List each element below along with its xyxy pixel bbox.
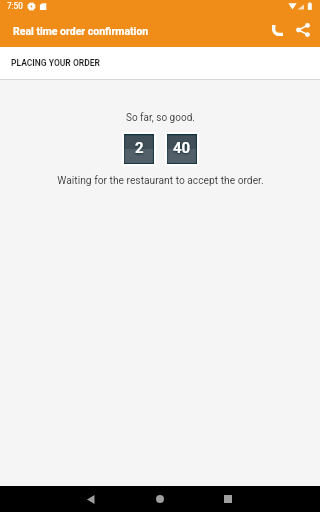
staticText: 2 — [135, 139, 144, 157]
staticText: PLACING YOUR ORDER — [11, 58, 100, 68]
button[interactable]: Recent apps — [202, 486, 254, 512]
staticText: 7:50 — [7, 1, 23, 11]
staticText: Waiting for the restaurant to accept the… — [57, 174, 264, 186]
staticText: So far, so good. — [126, 112, 195, 124]
button[interactable]: Call restaurant — [264, 17, 290, 43]
button[interactable]: Back — [65, 486, 117, 512]
staticText: 40 — [173, 139, 191, 157]
button[interactable]: Share — [290, 17, 316, 43]
staticText: Real time order confirmation — [13, 25, 149, 37]
button[interactable]: Home — [134, 486, 186, 512]
